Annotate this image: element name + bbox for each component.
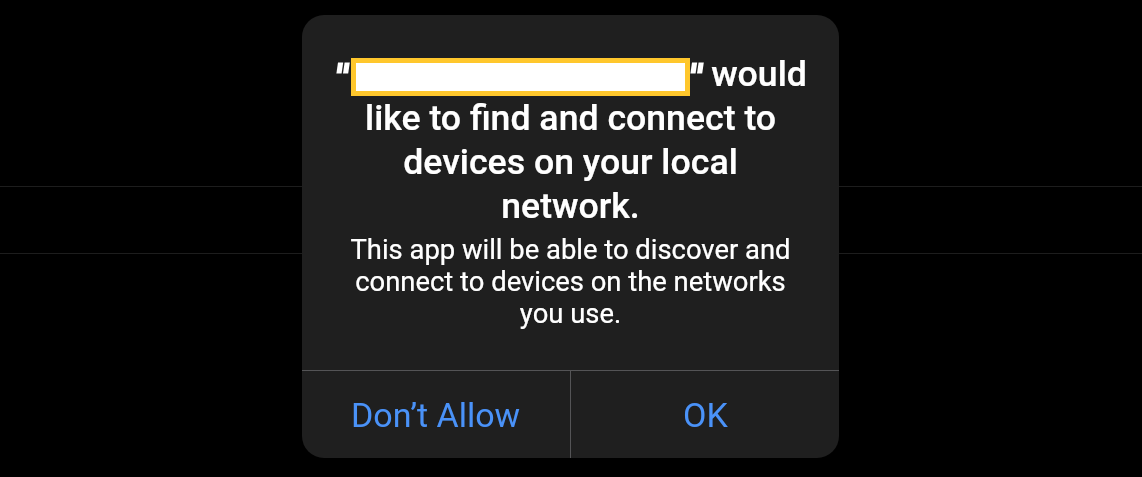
- staticText: This app will be able to discover and co…: [350, 234, 791, 330]
- staticText: like to find and connect to devices on y…: [365, 97, 776, 226]
- staticText: Don’t Allow: [351, 395, 521, 435]
- staticText: would: [711, 53, 807, 95]
- staticText: OK: [683, 395, 728, 435]
- button[interactable]: OK: [571, 371, 839, 458]
- button[interactable]: Don’t Allow: [302, 371, 570, 458]
